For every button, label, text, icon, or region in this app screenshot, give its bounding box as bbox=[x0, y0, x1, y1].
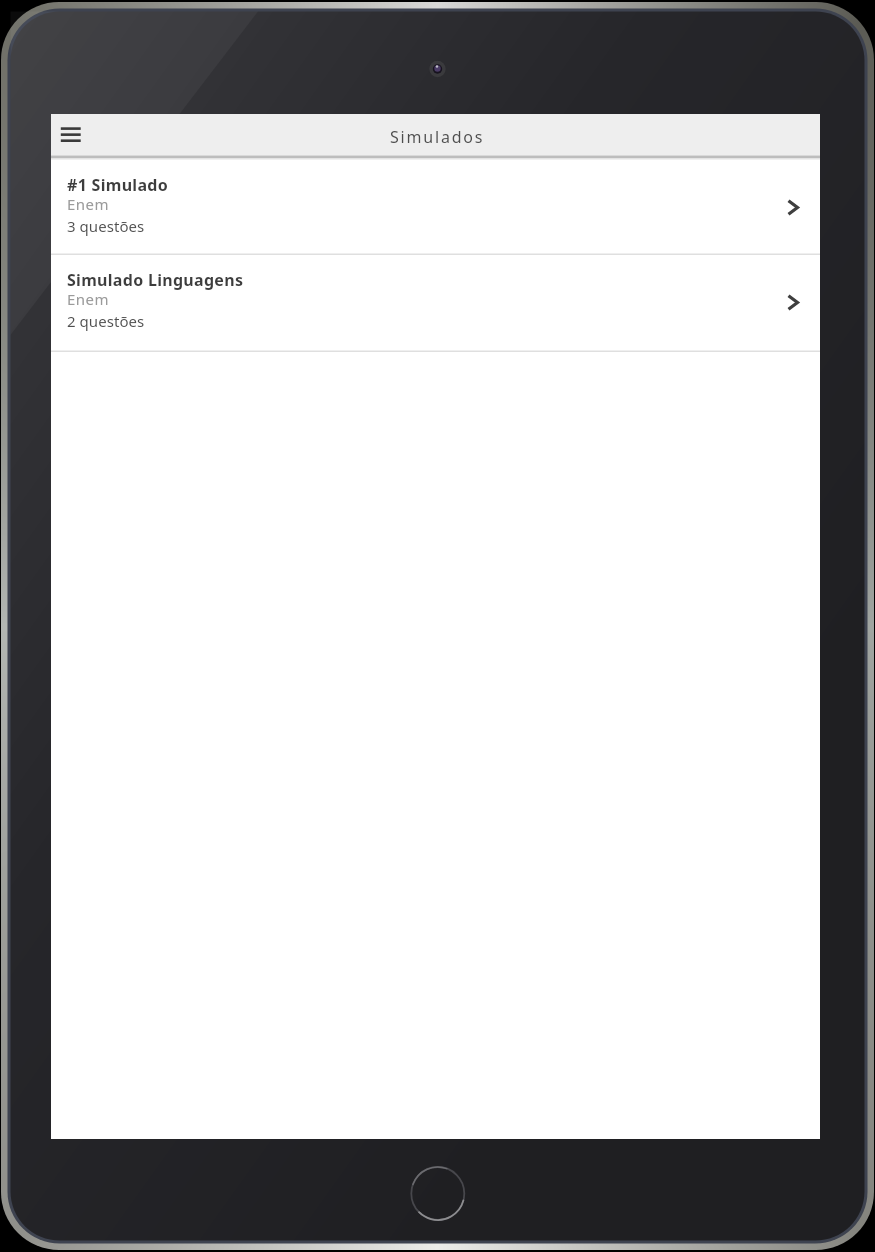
staticText: #1 Simulado bbox=[67, 174, 169, 196]
staticText: Simulado Linguagens bbox=[67, 269, 244, 291]
staticText: 3 questões bbox=[67, 216, 145, 236]
button[interactable]: #1 Simulado bbox=[51, 159, 820, 256]
staticText: Enem bbox=[67, 289, 110, 309]
staticText: 2 questões bbox=[67, 311, 145, 331]
staticText: Enem bbox=[67, 194, 110, 214]
staticText: Simulados bbox=[390, 126, 485, 148]
button[interactable]: Simulado Linguagens bbox=[51, 254, 820, 351]
button[interactable] bbox=[53, 120, 89, 150]
